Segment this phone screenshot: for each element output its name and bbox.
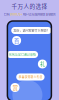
staticText: 千万人的选择 [11, 2, 47, 10]
staticText: 礼 [40, 60, 45, 68]
staticText: 1000万+ [9, 11, 22, 16]
staticText: 用户正在使用我们的服务 [22, 11, 55, 16]
staticText: 您好，请问需要什么帮助？ [13, 28, 49, 33]
staticText: 赏 [12, 84, 17, 91]
staticText: 恭喜获得新人礼包 [18, 75, 42, 79]
staticText: 已有 [3, 11, 9, 16]
staticText: 首 [14, 37, 19, 44]
staticText: 实名认证已通过审核 [9, 52, 36, 57]
